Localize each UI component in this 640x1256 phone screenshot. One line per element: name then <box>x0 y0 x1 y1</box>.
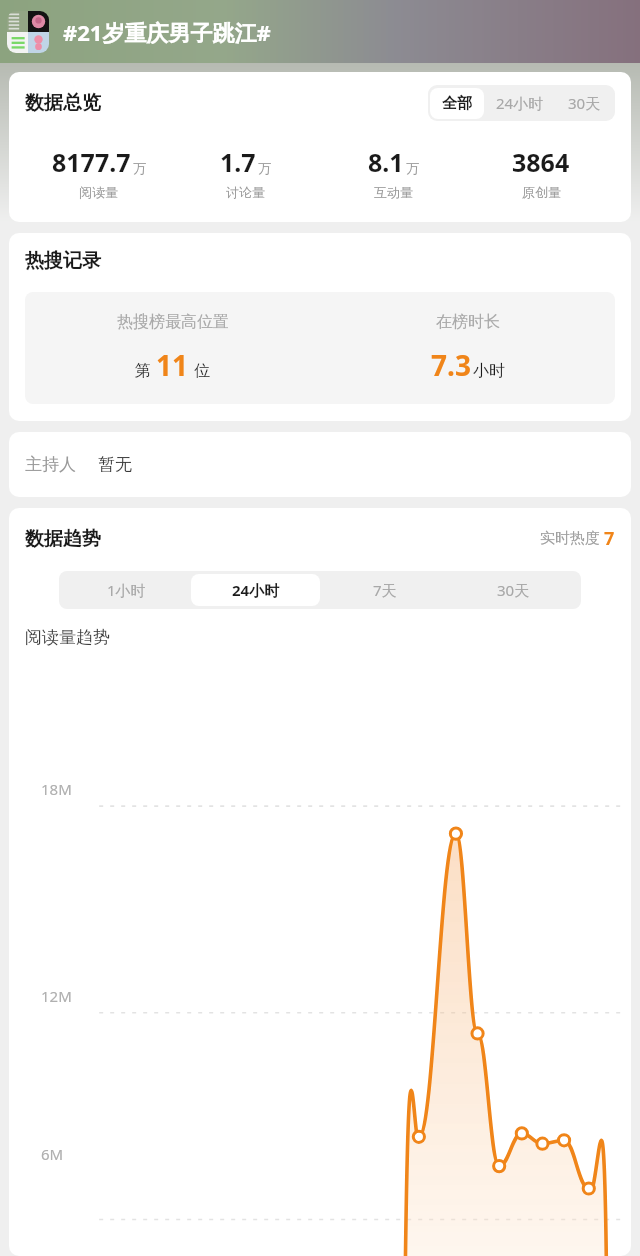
staticText: 12M <box>41 986 72 1006</box>
button[interactable]: 7天 <box>320 574 449 606</box>
other: Topic thumbnail <box>7 11 49 53</box>
staticText: 数据总览 <box>25 91 101 115</box>
staticText: 全部 <box>442 94 472 113</box>
staticText: 24小时 <box>232 580 280 600</box>
staticText: 阅读量 <box>79 184 118 200</box>
staticText: 万 <box>406 160 419 176</box>
button[interactable]: 1小时 <box>62 574 191 606</box>
staticText: 热搜榜最高位置 <box>117 312 229 332</box>
staticText: 万 <box>258 160 271 176</box>
staticText: 30天 <box>568 93 601 113</box>
button[interactable]: 30天 <box>449 574 578 606</box>
staticText: 11 <box>156 346 189 384</box>
staticText: 位 <box>194 361 210 381</box>
staticText: 7.3 <box>431 346 471 384</box>
staticText: 8.1 <box>368 145 404 179</box>
staticText: 数据趋势 <box>25 527 101 551</box>
staticText: 7 <box>604 526 615 551</box>
staticText: 1.7 <box>220 145 256 179</box>
staticText: 24小时 <box>496 93 544 113</box>
staticText: 8177.7 <box>52 145 131 179</box>
button[interactable]: 24小时 <box>191 574 320 606</box>
button[interactable]: 24小时 <box>484 87 556 119</box>
staticText: #21岁重庆男子跳江# <box>63 17 271 47</box>
staticText: 6M <box>41 1144 64 1164</box>
staticText: 阅读量趋势 <box>25 627 110 648</box>
staticText: 30天 <box>497 580 530 600</box>
staticText: 小时 <box>473 361 505 381</box>
staticText: 3864 <box>512 145 570 179</box>
staticText: 万 <box>133 160 146 176</box>
button[interactable]: 30天 <box>556 87 613 119</box>
staticText: 讨论量 <box>226 184 265 200</box>
staticText: 第 <box>135 361 151 381</box>
staticText: 热搜记录 <box>25 249 101 273</box>
staticText: 互动量 <box>374 184 413 200</box>
staticText: 7天 <box>373 580 397 600</box>
staticText: 暂无 <box>98 454 132 475</box>
staticText: 18M <box>41 779 72 799</box>
staticText: 在榜时长 <box>436 312 500 332</box>
staticText: 原创量 <box>522 184 561 200</box>
staticText: 主持人 <box>25 454 76 475</box>
staticText: 实时热度 <box>540 529 600 548</box>
button[interactable]: 全部 <box>430 88 484 119</box>
button[interactable]: 主持人 <box>9 432 631 497</box>
staticText: 1小时 <box>107 580 146 600</box>
